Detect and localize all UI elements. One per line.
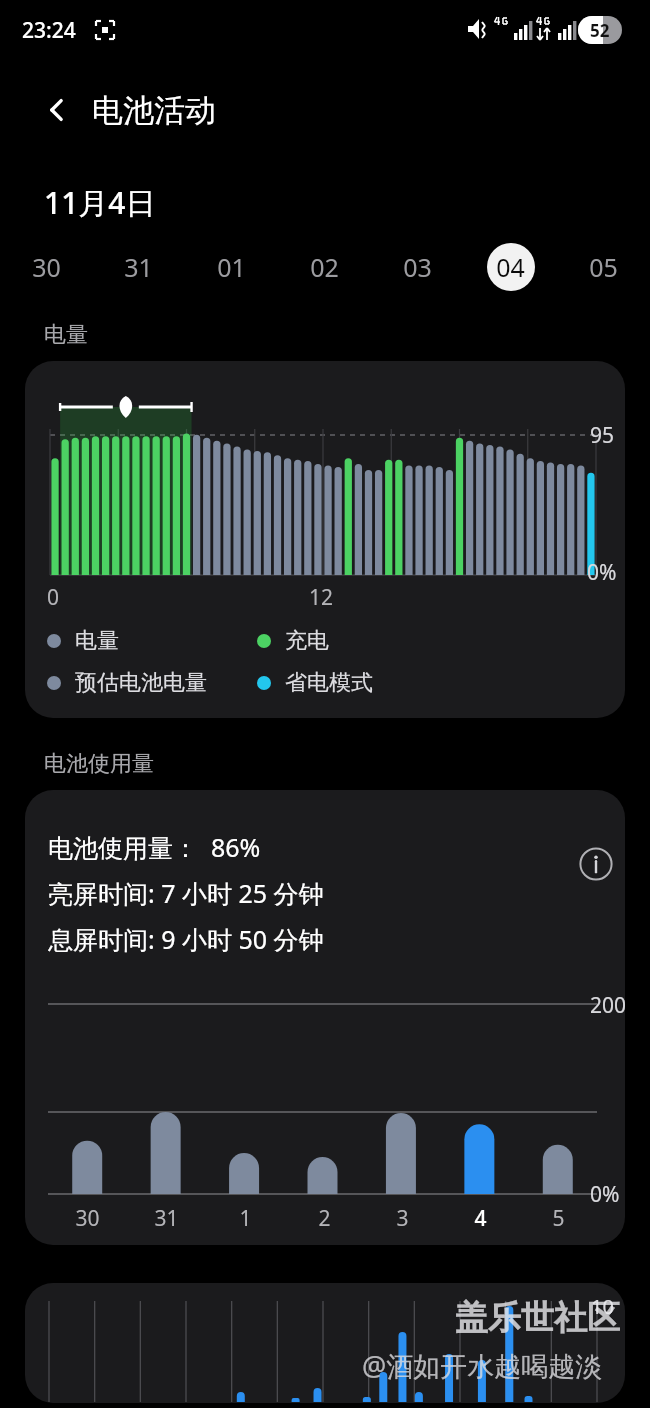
staticText: @酒如开水越喝越淡: [362, 1347, 603, 1384]
staticText: 03: [403, 250, 432, 284]
staticText: 4: [474, 1204, 487, 1233]
staticText: 盖乐世社区: [455, 1297, 620, 1339]
staticText: 电池使用量： 86%: [48, 830, 261, 864]
staticText: 0: [47, 583, 60, 612]
button[interactable]: 31: [92, 241, 185, 293]
button[interactable]: 03: [371, 241, 464, 293]
staticText: 电量: [75, 627, 119, 655]
staticText: 23:24: [22, 16, 76, 45]
staticText: 0%: [590, 1180, 620, 1209]
button[interactable]: 04: [464, 241, 557, 293]
staticText: 12: [309, 583, 334, 612]
staticText: 0%: [587, 558, 617, 587]
staticText: 省电模式: [285, 669, 373, 697]
button[interactable]: Back: [34, 87, 80, 133]
staticText: 30: [75, 1204, 100, 1233]
staticText: 52: [590, 19, 610, 42]
button[interactable]: Info: [575, 843, 617, 885]
staticText: 1: [239, 1204, 252, 1233]
staticText: 10: [591, 1293, 614, 1320]
button[interactable]: 02: [278, 241, 371, 293]
staticText: 200: [590, 991, 625, 1020]
staticText: 充电: [285, 627, 329, 655]
button[interactable]: 01: [185, 241, 278, 293]
staticText: 31: [124, 250, 153, 284]
staticText: 04: [496, 250, 525, 284]
staticText: 02: [310, 250, 339, 284]
staticText: 电池活动: [92, 91, 216, 130]
staticText: 05: [589, 250, 618, 284]
staticText: 11月4日: [44, 182, 156, 223]
staticText: 电池使用量: [44, 750, 154, 778]
staticText: 5: [552, 1204, 565, 1233]
staticText: 30: [32, 250, 61, 284]
staticText: 息屏时间: 9 小时 50 分钟: [48, 922, 324, 956]
staticText: 31: [154, 1204, 179, 1233]
staticText: 亮屏时间: 7 小时 25 分钟: [48, 876, 324, 910]
staticText: 95: [590, 421, 615, 450]
staticText: 3: [396, 1204, 409, 1233]
button[interactable]: 30: [0, 241, 92, 293]
button[interactable]: 05: [557, 241, 650, 293]
staticText: 2: [318, 1204, 331, 1233]
staticText: 01: [217, 250, 246, 284]
staticText: 预估电池电量: [75, 669, 207, 697]
staticText: 电量: [44, 321, 88, 349]
button[interactable]: 95: [25, 361, 625, 718]
